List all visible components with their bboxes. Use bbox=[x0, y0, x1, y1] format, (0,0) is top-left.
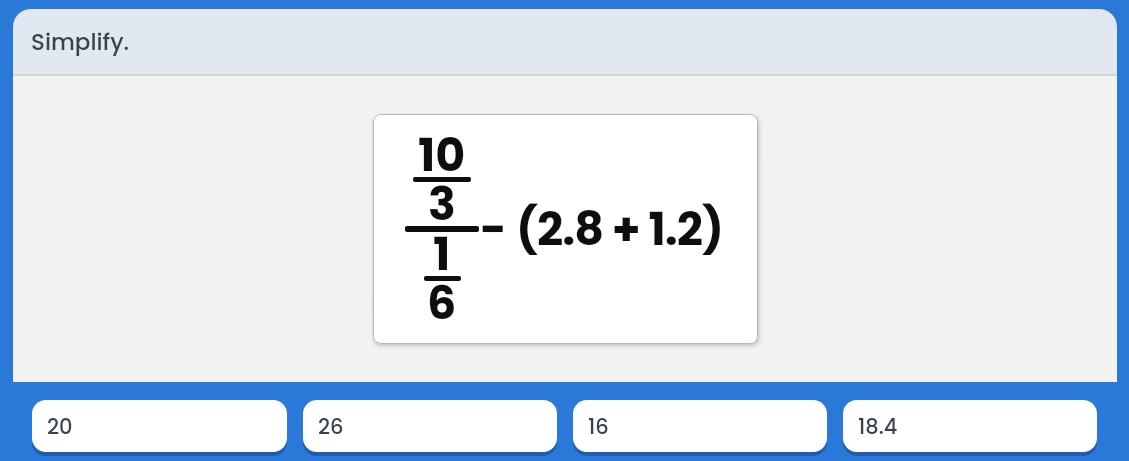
staticText: 16 bbox=[588, 412, 609, 441]
staticText: 18.4 bbox=[858, 412, 898, 441]
button[interactable]: 20 bbox=[32, 400, 287, 452]
staticText: (2.8 + 1.2) bbox=[516, 197, 723, 261]
staticText: 3 bbox=[428, 172, 456, 236]
staticText: 1 bbox=[433, 222, 451, 286]
button[interactable]: 18.4 bbox=[843, 400, 1097, 452]
staticText: 20 bbox=[47, 412, 73, 441]
staticText: 6 bbox=[427, 271, 457, 335]
button[interactable]: 26 bbox=[303, 400, 557, 452]
staticText: Simplify. bbox=[31, 26, 130, 58]
staticText: − bbox=[480, 197, 505, 261]
staticText: 26 bbox=[318, 412, 344, 441]
button[interactable]: 16 bbox=[573, 400, 827, 452]
staticText: 10 bbox=[418, 123, 466, 187]
